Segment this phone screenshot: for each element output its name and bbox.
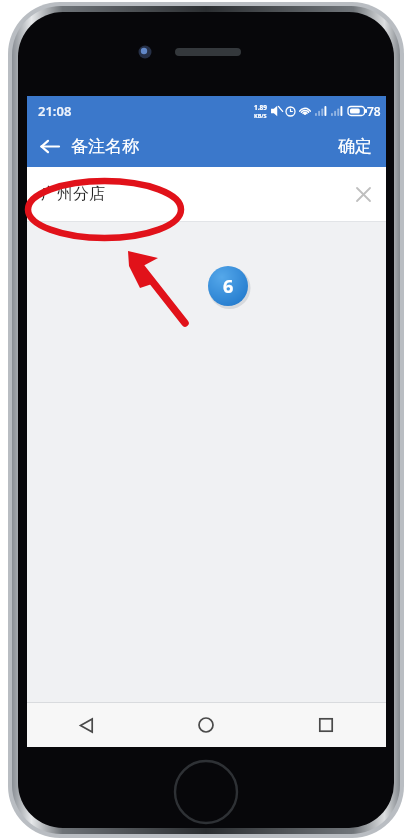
other: Step 6 [206,264,250,308]
button[interactable]: Clear text [340,171,386,217]
staticText: 21:08 [38,102,72,120]
staticText: KB/S [254,112,267,119]
staticText: 广州分店 [41,184,340,204]
button[interactable]: 广州分店 [27,167,386,221]
button[interactable]: 确定 [324,126,386,167]
staticText: 6 [223,274,234,299]
staticText: 确定 [338,136,372,157]
staticText: 1.89 [254,103,267,112]
button[interactable]: Back [27,703,146,747]
button[interactable]: Back [27,126,71,167]
button[interactable]: Recent apps [266,703,386,747]
staticText: 78 [367,103,381,119]
button[interactable]: Home [146,703,266,747]
staticText: 备注名称 [71,136,139,157]
